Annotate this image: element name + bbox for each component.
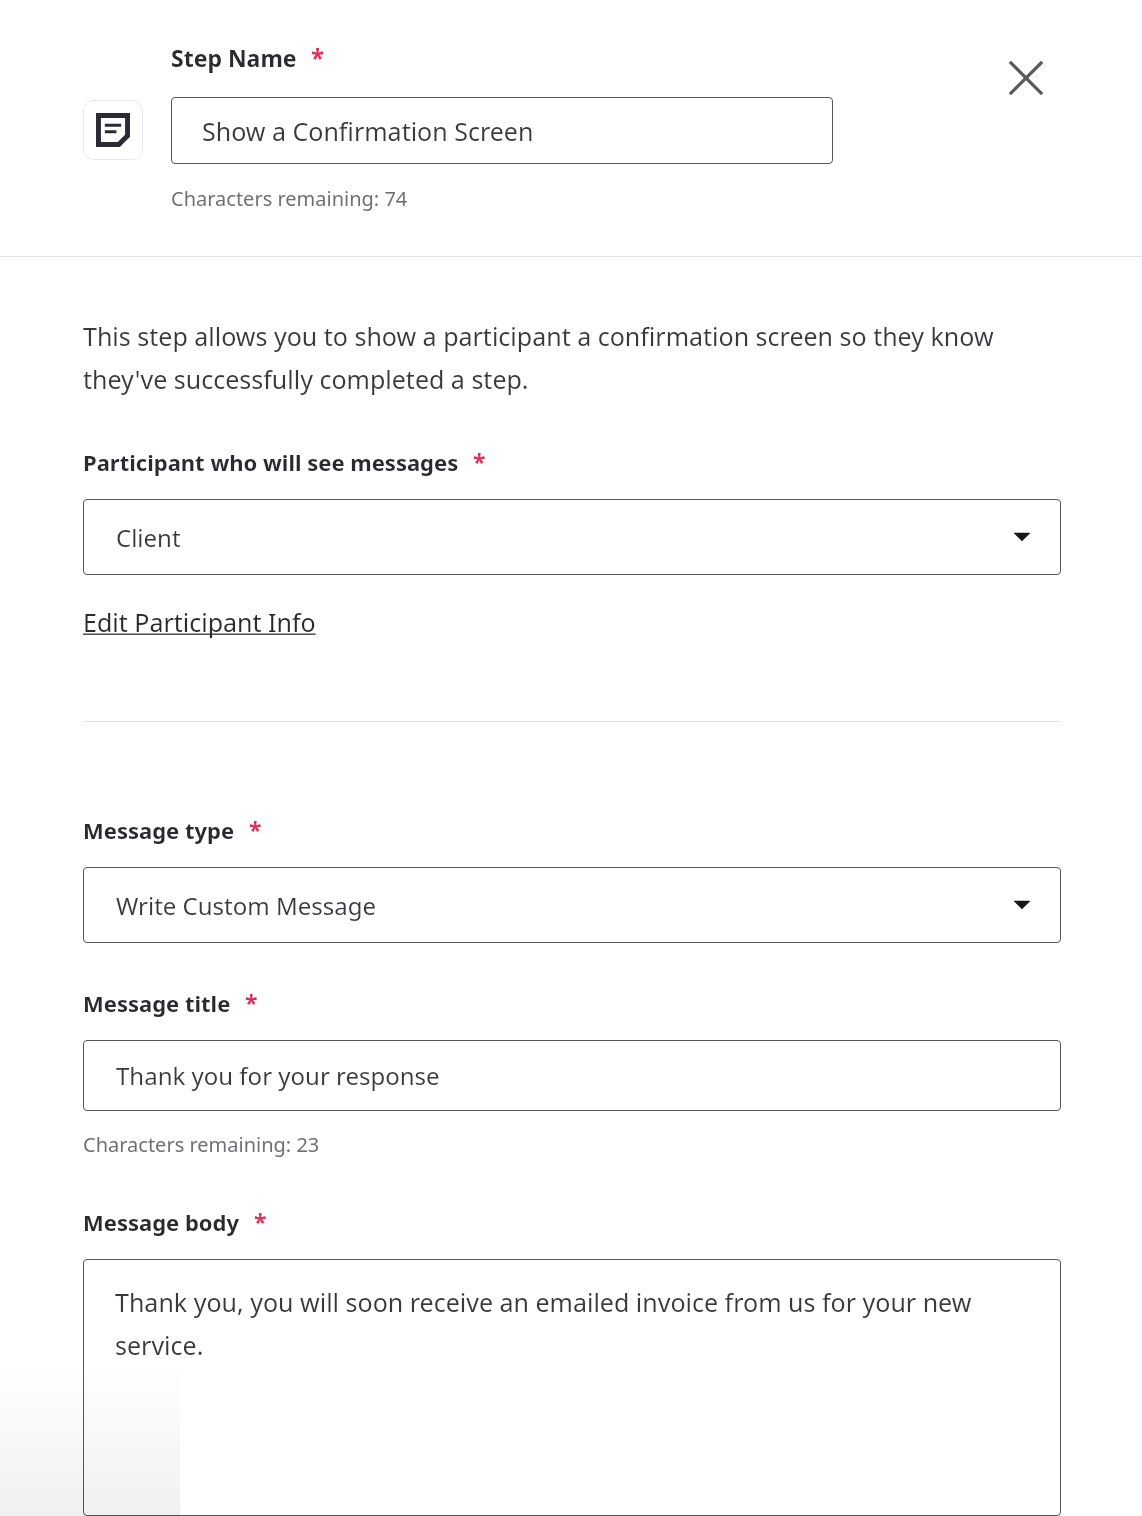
staticText: * [245,987,258,1018]
staticText: Thank you, you will soon receive an emai… [115,1285,1037,1362]
button[interactable]: Thank you, you will soon receive an emai… [83,1259,1061,1516]
staticText: This step allows you to show a participa… [83,319,1061,396]
button[interactable]: Edit Participant Info [83,605,316,639]
button[interactable]: Participant who will see messages [83,499,1061,575]
staticText: * [473,446,486,477]
staticText: Message title [83,988,231,1018]
staticText: * [254,1206,267,1237]
staticText: Show a Confirmation Screen [202,114,534,148]
button[interactable]: Show a Confirmation Screen [171,97,833,164]
staticText: Participant who will see messages [83,447,459,477]
staticText: Thank you for your response [116,1059,440,1092]
staticText: Characters remaining: 74 [171,185,408,212]
staticText: * [249,814,262,845]
staticText: Write Custom Message [116,889,377,922]
button[interactable]: Step icon [83,100,143,160]
staticText: * [311,41,325,74]
button[interactable]: Close [996,48,1056,108]
staticText: Client [116,521,181,554]
staticText: Step Name [171,42,297,73]
staticText: Message body [83,1207,240,1237]
button[interactable]: Thank you for your response [83,1040,1061,1111]
staticText: Characters remaining: 23 [83,1131,320,1158]
staticText: Edit Participant Info [83,605,316,639]
button[interactable]: Message type [83,867,1061,943]
staticText: Message type [83,815,235,845]
